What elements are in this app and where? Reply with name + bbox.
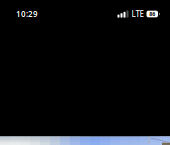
staticText: 10:29 [16,9,38,19]
staticText: LTE [131,9,143,19]
staticText: 86 [149,10,155,18]
